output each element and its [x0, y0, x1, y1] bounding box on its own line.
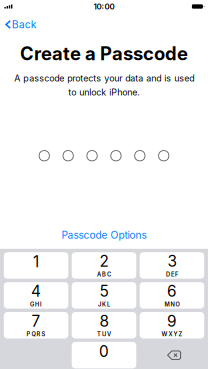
staticText: 0 [99, 342, 109, 361]
staticText: 6 [167, 282, 177, 300]
staticText: W X Y Z [161, 331, 182, 338]
button[interactable]: Passcode Options [0, 225, 208, 245]
button[interactable]: 4 [4, 282, 68, 309]
button[interactable]: Delete [140, 342, 204, 368]
staticText: G H I [30, 301, 42, 308]
staticText: 3 [167, 252, 176, 271]
button[interactable]: 1 [4, 252, 68, 279]
button[interactable]: 5 [72, 282, 136, 309]
button[interactable]: 0 [72, 342, 136, 368]
staticText: A passcode protects your data and is use… [14, 73, 194, 98]
staticText: D E F [166, 271, 178, 278]
button[interactable]: Back [0, 13, 45, 33]
staticText: A B C [97, 271, 111, 278]
button[interactable]: 7 [4, 312, 68, 338]
button[interactable]: 3 [140, 252, 204, 279]
button[interactable]: 8 [72, 312, 136, 338]
staticText: J K L [98, 301, 110, 308]
staticText: Passcode Options [61, 229, 146, 241]
button[interactable]: 2 [72, 252, 136, 279]
staticText: 9 [167, 312, 177, 330]
staticText: 4 [31, 282, 41, 300]
staticText: 8 [99, 312, 108, 330]
staticText: P Q R S [27, 331, 46, 338]
staticText: 10:00 [93, 2, 114, 11]
button[interactable]: 9 [140, 312, 204, 338]
staticText: 1 [33, 252, 39, 271]
staticText: Create a Passcode [20, 42, 188, 65]
staticText: M N O [164, 301, 179, 308]
staticText: T U V [97, 331, 111, 338]
staticText: 2 [99, 252, 108, 271]
staticText: 7 [32, 312, 41, 330]
staticText: 5 [99, 282, 108, 300]
staticText: Back [12, 18, 37, 31]
button[interactable]: 6 [140, 282, 204, 309]
